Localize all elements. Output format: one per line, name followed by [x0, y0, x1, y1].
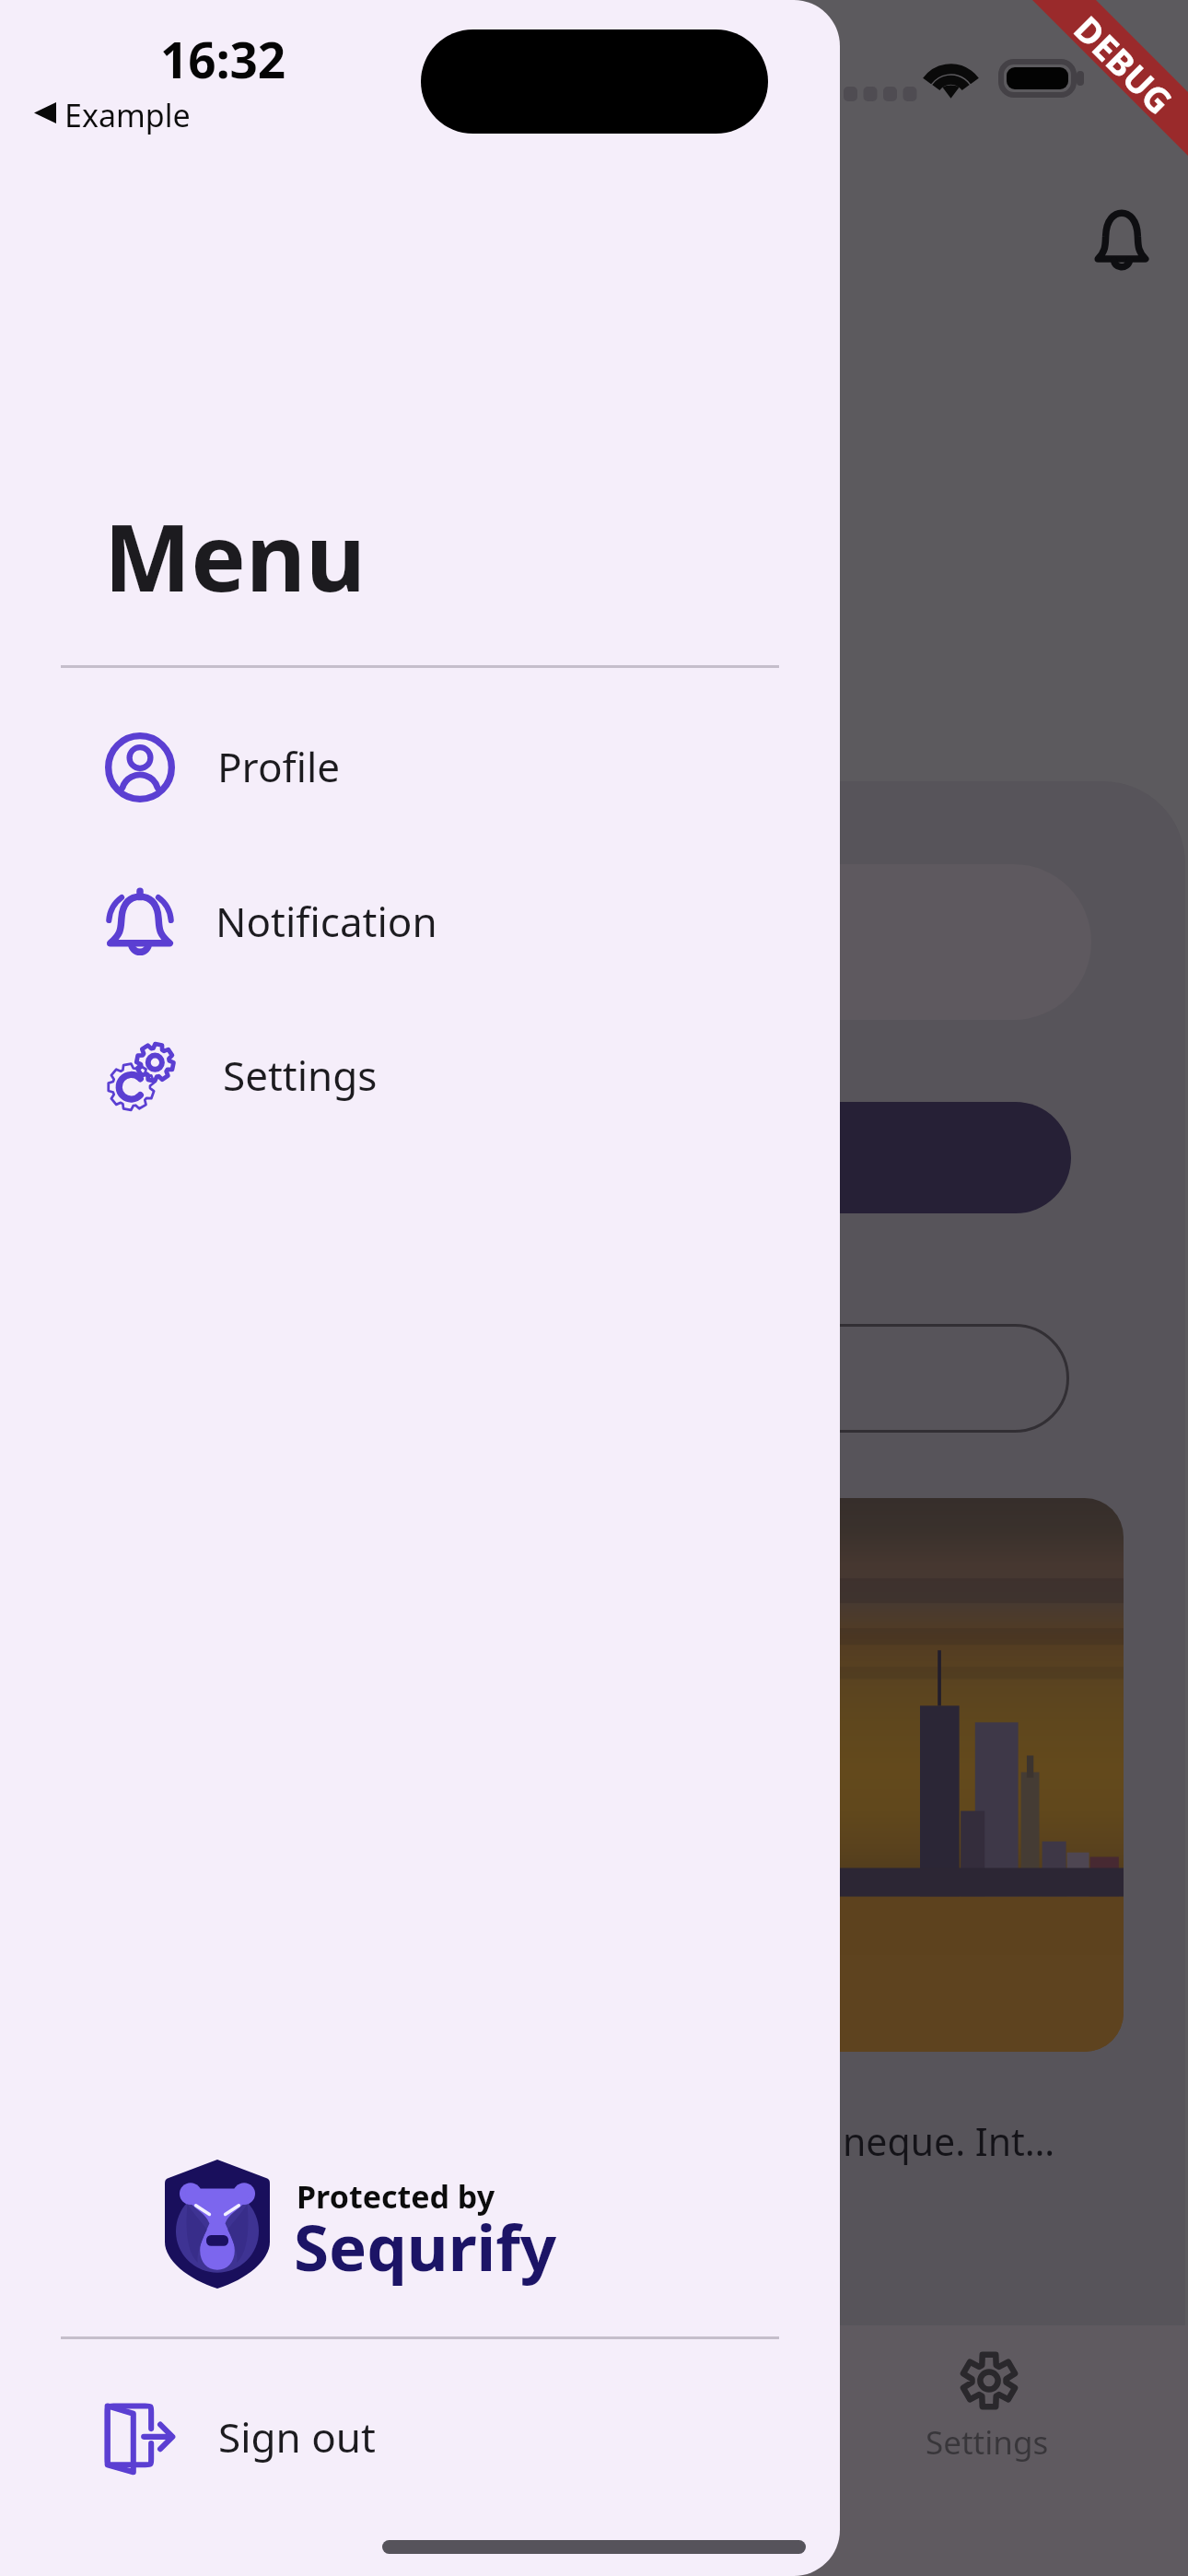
staticText: 16:32 [160, 26, 286, 92]
staticText: Notification [215, 894, 437, 949]
button[interactable]: Close menu [840, 0, 1188, 2576]
button[interactable]: Profile [0, 714, 779, 821]
staticText: Settings [926, 2420, 1049, 2465]
staticText: Sign out [218, 2409, 376, 2465]
staticText: Settings [223, 1048, 378, 1103]
button[interactable]: Notifications [1076, 193, 1168, 286]
button[interactable]: Notification [0, 869, 779, 976]
staticText: Profile [217, 739, 341, 794]
button[interactable]: Sign out [0, 2384, 779, 2491]
staticText: DEBUG [1064, 5, 1184, 124]
button[interactable]: Settings [888, 2329, 1090, 2495]
staticText: Menu [104, 493, 366, 618]
staticText: Sequrify [294, 2203, 557, 2289]
staticText: neque. Int… [843, 2115, 1055, 2167]
staticText: Example [64, 94, 191, 136]
staticText: Protected by [297, 2175, 495, 2218]
button[interactable]: Settings [0, 1023, 779, 1130]
